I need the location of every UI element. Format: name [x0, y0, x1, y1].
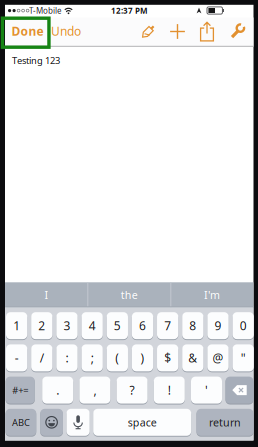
- button[interactable]: /: [31, 344, 52, 372]
- button[interactable]: Undo: [44, 19, 88, 43]
- staticText: ?: [130, 382, 135, 398]
- button[interactable]: Done: [6, 19, 48, 43]
- button[interactable]: !: [154, 376, 185, 404]
- button[interactable]: ': [191, 376, 222, 404]
- staticText: #+=: [12, 384, 28, 396]
- staticText: 7: [164, 318, 171, 334]
- button[interactable]: 7: [157, 312, 178, 340]
- staticText: Done: [11, 23, 43, 39]
- staticText: ,: [93, 382, 96, 398]
- button[interactable]: Share: [196, 20, 218, 42]
- staticText: ABC: [12, 416, 30, 428]
- staticText: ': [205, 382, 208, 398]
- button[interactable]: :: [56, 344, 78, 372]
- staticText: 3: [63, 318, 70, 334]
- button[interactable]: Return: [196, 408, 253, 436]
- button[interactable]: Dictate: [66, 408, 90, 436]
- staticText: ": [241, 350, 246, 366]
- staticText: ): [140, 350, 144, 366]
- button[interactable]: 8: [182, 312, 203, 340]
- staticText: 2: [38, 318, 45, 334]
- staticText: :: [65, 350, 68, 366]
- staticText: 6: [139, 318, 146, 334]
- button[interactable]: More symbols: [6, 376, 35, 404]
- button[interactable]: -: [6, 344, 27, 372]
- button[interactable]: @: [207, 344, 229, 372]
- button[interactable]: I'm: [172, 282, 252, 307]
- button[interactable]: 2: [31, 312, 52, 340]
- staticText: .: [56, 382, 59, 398]
- button[interactable]: Letters: [5, 408, 36, 436]
- staticText: 0: [240, 318, 247, 334]
- staticText: 12:37 PM: [111, 5, 148, 16]
- button[interactable]: Settings: [226, 20, 248, 42]
- button[interactable]: space: [93, 408, 191, 436]
- staticText: T-Mobile: [29, 5, 62, 16]
- staticText: /: [40, 350, 44, 366]
- staticText: -: [15, 350, 19, 366]
- staticText: 4: [89, 318, 96, 334]
- button[interactable]: Emoji: [40, 408, 63, 436]
- button[interactable]: Markup: [137, 20, 159, 42]
- button[interactable]: (: [107, 344, 128, 372]
- button[interactable]: &: [182, 344, 203, 372]
- button[interactable]: Add: [166, 20, 188, 42]
- button[interactable]: Delete: [225, 376, 253, 404]
- staticText: space: [128, 415, 157, 429]
- button[interactable]: ": [232, 344, 254, 372]
- staticText: ;: [91, 350, 94, 366]
- button[interactable]: 9: [207, 312, 229, 340]
- button[interactable]: 6: [132, 312, 153, 340]
- staticText: $: [164, 350, 171, 366]
- staticText: @: [212, 350, 223, 366]
- button[interactable]: ?: [117, 376, 148, 404]
- button[interactable]: $: [157, 344, 178, 372]
- staticText: 8: [189, 318, 196, 334]
- button[interactable]: ;: [81, 344, 103, 372]
- staticText: 9: [214, 318, 221, 334]
- button[interactable]: 3: [56, 312, 78, 340]
- button[interactable]: ): [132, 344, 153, 372]
- button[interactable]: ,: [79, 376, 110, 404]
- staticText: the: [121, 288, 138, 302]
- button[interactable]: the: [89, 282, 169, 307]
- button[interactable]: 1: [6, 312, 27, 340]
- staticText: return: [209, 415, 241, 429]
- button[interactable]: I: [6, 282, 86, 307]
- staticText: Testing 123: [12, 54, 60, 67]
- staticText: I'm: [204, 288, 220, 302]
- staticText: I: [44, 288, 48, 302]
- staticText: &: [188, 350, 197, 366]
- staticText: Undo: [51, 23, 81, 39]
- button[interactable]: .: [42, 376, 73, 404]
- staticText: !: [168, 382, 171, 398]
- staticText: (: [115, 350, 119, 366]
- button[interactable]: 4: [81, 312, 103, 340]
- button[interactable]: 5: [107, 312, 128, 340]
- staticText: 5: [114, 318, 121, 334]
- button[interactable]: 0: [232, 312, 254, 340]
- staticText: 1: [13, 318, 20, 334]
